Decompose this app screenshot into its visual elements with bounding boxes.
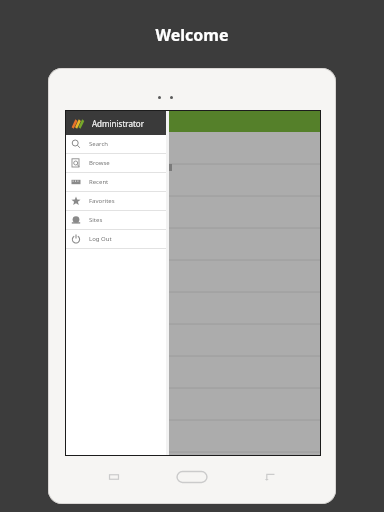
button[interactable]: Home — [175, 469, 209, 485]
other: Sites — [71, 215, 81, 225]
staticText: Sites — [89, 216, 103, 224]
button[interactable]: Recents — [106, 469, 122, 485]
other: Recent — [71, 177, 81, 187]
staticText: Favorites — [89, 197, 115, 205]
button[interactable]: Browse — [66, 154, 166, 172]
staticText: Search — [89, 140, 108, 148]
button[interactable]: Favorites — [66, 192, 166, 210]
button[interactable]: Administrator — [66, 111, 166, 135]
staticText: Recent — [89, 178, 109, 186]
other: Log Out — [71, 234, 81, 244]
button[interactable]: Sites — [66, 211, 166, 229]
staticText: Administrator — [92, 118, 144, 129]
staticText: Log Out — [89, 235, 112, 243]
button[interactable]: Log Out — [66, 230, 166, 248]
button[interactable]: Back — [262, 469, 278, 485]
button[interactable]: Recent — [66, 173, 166, 191]
other: Search — [71, 139, 81, 149]
other: Browse — [71, 158, 81, 168]
staticText: Browse — [89, 159, 110, 167]
staticText: Welcome — [0, 24, 384, 46]
button[interactable]: Search — [66, 135, 166, 153]
other: Favorites — [71, 196, 81, 206]
